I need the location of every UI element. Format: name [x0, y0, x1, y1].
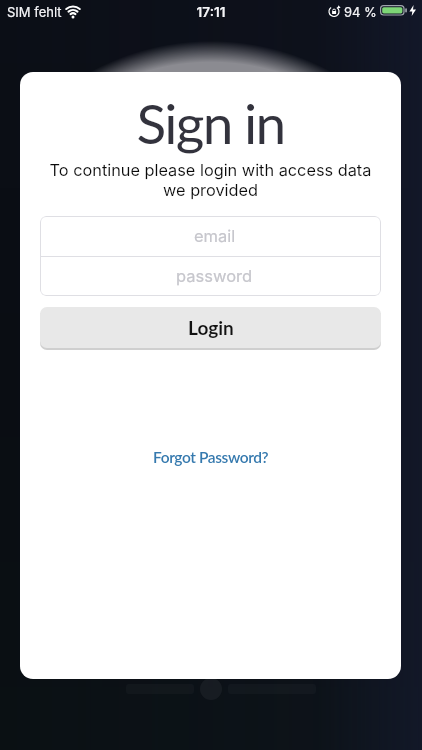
staticText: SIM fehlt	[7, 4, 62, 20]
staticText: Login	[188, 316, 234, 339]
button[interactable]: Forgot Password?	[147, 444, 275, 470]
staticText: Sign in	[20, 90, 401, 156]
button[interactable]: email	[40, 216, 381, 256]
staticText: To continue please login with access dat…	[20, 160, 401, 200]
staticText: Forgot Password?	[153, 448, 269, 467]
staticText: email	[194, 226, 236, 246]
staticText: password	[176, 266, 253, 286]
staticText: 17:11	[0, 4, 422, 20]
button[interactable]: Login	[40, 307, 381, 348]
staticText: 94 %	[344, 4, 377, 20]
button[interactable]: password	[40, 256, 381, 296]
